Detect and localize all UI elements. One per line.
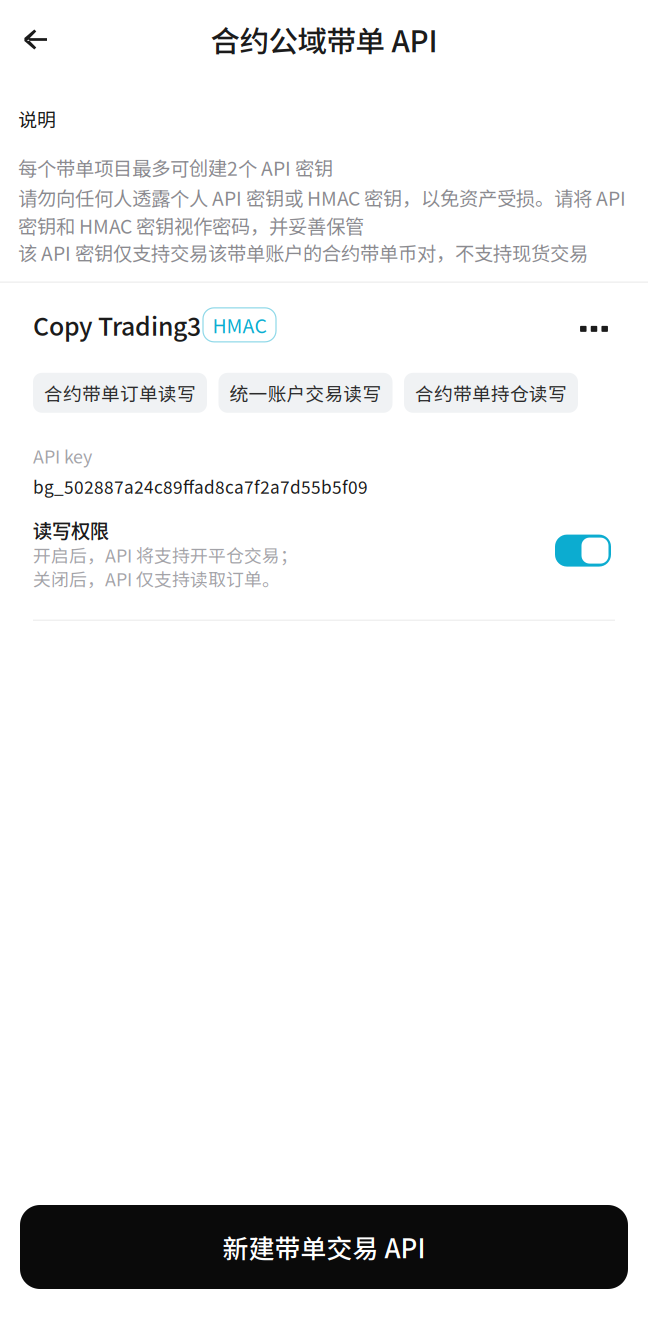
staticText: 合约带单持仓读写 bbox=[415, 379, 567, 406]
staticText: 新建带单交易 API bbox=[222, 1228, 425, 1266]
button[interactable]: Read and write permission bbox=[539, 527, 615, 575]
staticText: 说明 bbox=[18, 105, 56, 132]
staticText: 每个带单项目最多可创建2个 API 密钥 bbox=[18, 153, 333, 181]
staticText: 读写权限 bbox=[33, 516, 109, 544]
staticText: HMAC bbox=[212, 311, 266, 339]
button[interactable]: 新建带单交易 API bbox=[20, 1205, 628, 1289]
staticText: API key bbox=[33, 443, 92, 469]
staticText: 合约带单订单读写 bbox=[44, 379, 196, 406]
staticText: 开启后，API 将支持开平仓交易； bbox=[33, 542, 298, 568]
staticText: bg_502887a24c89ffad8ca7f2a7d55b5f09 bbox=[33, 474, 368, 499]
staticText: 统一账户交易读写 bbox=[229, 379, 381, 406]
staticText: 该 API 密钥仅支持交易该带单账户的合约带单币对，不支持现货交易 bbox=[18, 238, 588, 266]
staticText: 合约公域带单 API bbox=[210, 18, 437, 61]
staticText: 请勿向任何人透露个人 API 密钥或 HMAC 密钥，以免资产受损。请将 API… bbox=[18, 183, 626, 239]
staticText: 关闭后，API 仅支持读取订单。 bbox=[33, 566, 280, 591]
button[interactable]: Back bbox=[12, 19, 59, 60]
button[interactable]: More options bbox=[573, 308, 615, 342]
staticText: Copy Trading3 bbox=[33, 307, 201, 343]
